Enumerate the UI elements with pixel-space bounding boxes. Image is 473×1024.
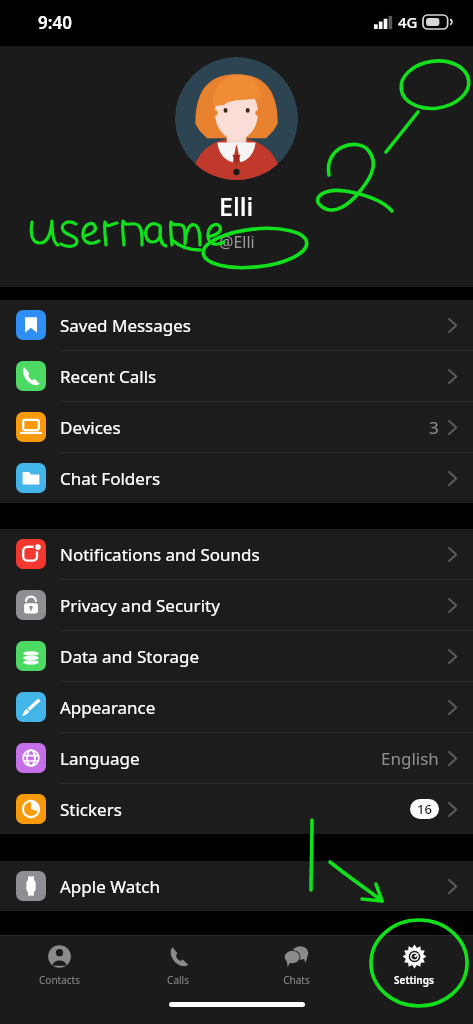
button[interactable]: Contacts (0, 936, 119, 994)
staticText: Settings (394, 973, 434, 987)
staticText: Language (60, 747, 381, 770)
staticText: Recent Calls (60, 365, 448, 388)
staticText: Saved Messages (60, 314, 448, 337)
staticText: Chats (283, 973, 310, 987)
staticText: 9:40 (38, 11, 72, 34)
staticText: Elli (219, 189, 254, 223)
staticText: Stickers (60, 798, 410, 821)
staticText: Privacy and Security (60, 594, 448, 617)
button[interactable]: Calls (119, 936, 237, 994)
button[interactable]: Data and Storage (0, 631, 473, 682)
button[interactable]: Privacy and Security (0, 580, 473, 631)
button[interactable]: Appearance (0, 682, 473, 733)
button[interactable]: Devices (0, 402, 473, 453)
staticText: Calls (167, 973, 189, 987)
staticText: Chat Folders (60, 467, 448, 490)
staticText: Notifications and Sounds (60, 543, 448, 566)
staticText: English (381, 747, 439, 770)
button[interactable]: Saved Messages (0, 300, 473, 351)
staticText: 4G (398, 12, 418, 32)
button[interactable]: Stickers (0, 784, 473, 834)
button[interactable]: Apple Watch (0, 861, 473, 911)
staticText: 16 (417, 800, 432, 818)
button[interactable]: Recent Calls (0, 351, 473, 402)
button[interactable]: Notifications and Sounds (0, 529, 473, 580)
staticText: Appearance (60, 696, 448, 719)
button[interactable]: Settings (355, 936, 473, 994)
staticText: Contacts (39, 973, 80, 987)
staticText: Data and Storage (60, 645, 448, 668)
staticText: 3 (429, 416, 439, 439)
staticText: @Elli (219, 231, 255, 253)
button[interactable]: Chat Folders (0, 453, 473, 503)
button[interactable]: Language (0, 733, 473, 784)
staticText: Devices (60, 416, 429, 439)
button[interactable]: Chats (237, 936, 355, 994)
staticText: Apple Watch (60, 875, 448, 898)
